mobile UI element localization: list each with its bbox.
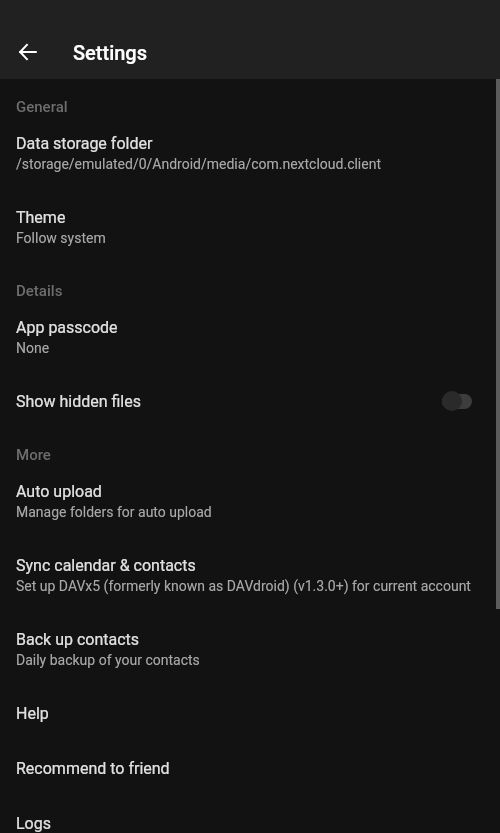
- button[interactable]: Theme: [0, 190, 500, 264]
- staticText: Recommend to friend: [16, 759, 170, 778]
- button[interactable]: Back: [6, 30, 50, 74]
- button[interactable]: Show hidden files: [0, 374, 500, 429]
- staticText: Sync calendar & contacts: [16, 556, 196, 575]
- staticText: /storage/emulated/0/Android/media/com.ne…: [16, 156, 382, 172]
- staticText: Daily backup of your contacts: [16, 652, 200, 668]
- staticText: Show hidden files: [16, 392, 442, 411]
- staticText: General: [16, 98, 68, 116]
- button[interactable]: App passcode: [0, 300, 500, 374]
- staticText: Back up contacts: [16, 630, 140, 649]
- button[interactable]: Sync calendar & contacts: [0, 538, 500, 612]
- button[interactable]: Auto upload: [0, 464, 500, 538]
- staticText: App passcode: [16, 318, 118, 337]
- staticText: Data storage folder: [16, 134, 153, 153]
- staticText: Auto upload: [16, 482, 102, 501]
- staticText: Set up DAVx5 (formerly known as DAVdroid…: [16, 578, 471, 594]
- button[interactable]: Back up contacts: [0, 612, 500, 686]
- staticText: Follow system: [16, 230, 106, 246]
- staticText: Help: [16, 704, 49, 723]
- staticText: Settings: [73, 41, 148, 64]
- staticText: More: [16, 446, 51, 464]
- button[interactable]: Help: [0, 686, 500, 741]
- staticText: Manage folders for auto upload: [16, 504, 212, 520]
- staticText: None: [16, 340, 50, 356]
- button[interactable]: Recommend to friend: [0, 741, 500, 796]
- staticText: Theme: [16, 208, 66, 227]
- staticText: Logs: [16, 814, 51, 833]
- button[interactable]: Logs: [0, 796, 500, 833]
- staticText: Details: [16, 282, 63, 300]
- button[interactable]: Data storage folder: [0, 116, 500, 190]
